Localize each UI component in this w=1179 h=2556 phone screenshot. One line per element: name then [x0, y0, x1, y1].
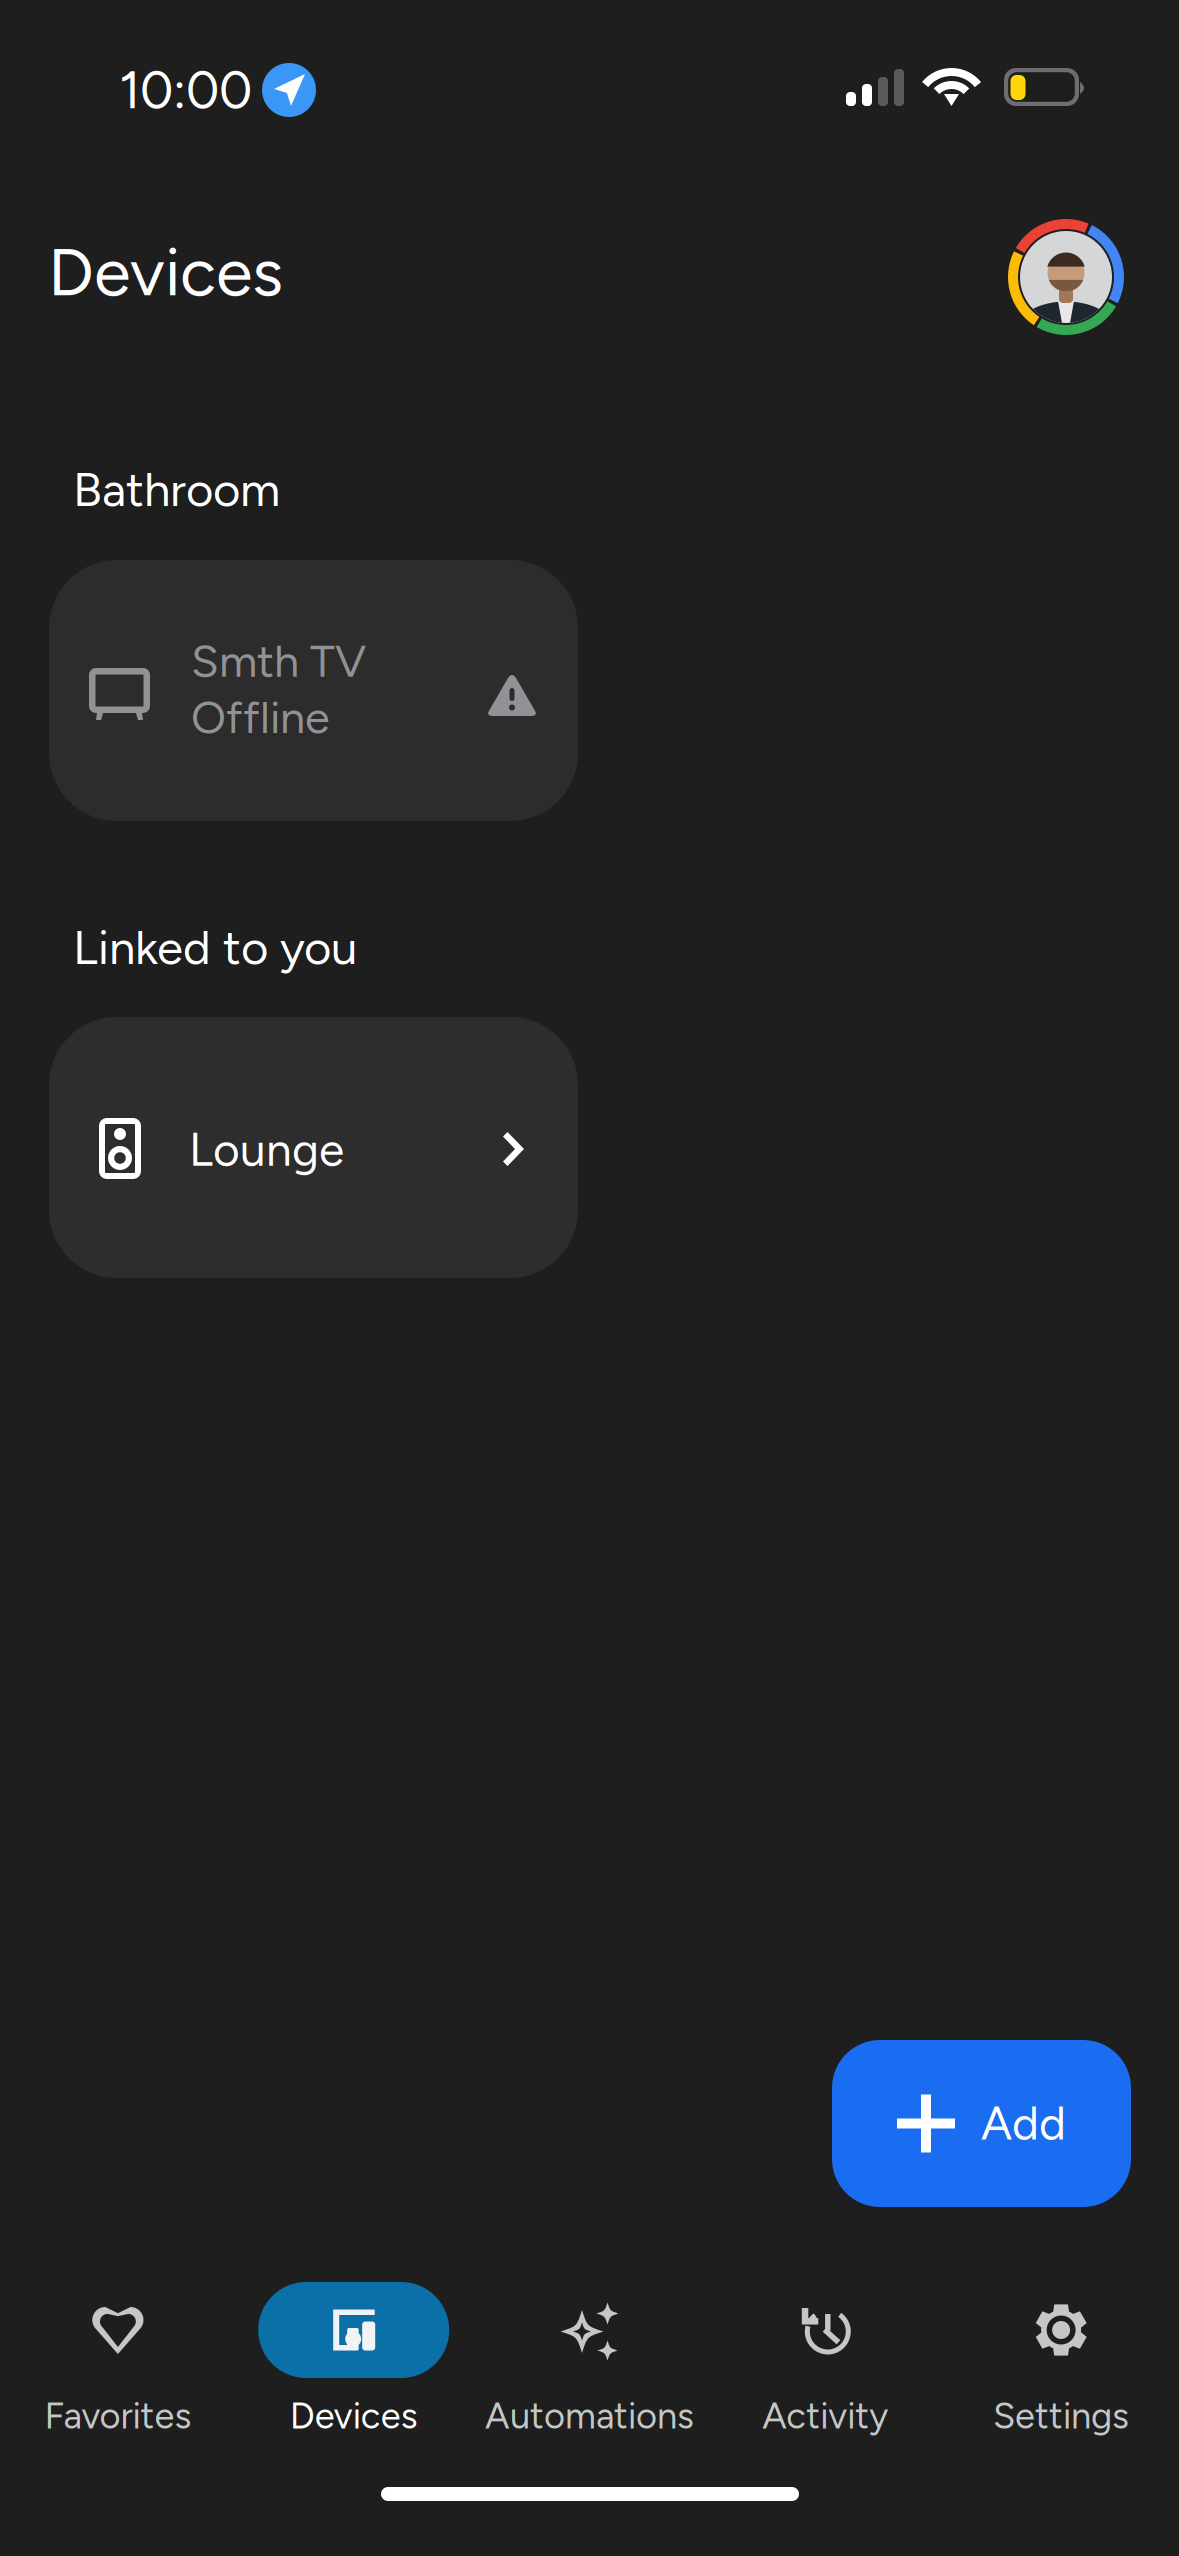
staticText: Linked to you: [73, 919, 357, 976]
button[interactable]: Lounge: [49, 1017, 578, 1278]
staticText: Bathroom: [73, 461, 280, 518]
staticText: Settings: [993, 2394, 1129, 2437]
button[interactable]: Favorites: [0, 2282, 236, 2452]
button[interactable]: Account: [1006, 217, 1126, 337]
staticText: Lounge: [189, 1122, 344, 1177]
staticText: Devices: [290, 2394, 418, 2437]
staticText: Offline: [191, 690, 330, 744]
staticText: 10:00: [119, 59, 252, 121]
staticText: Devices: [48, 232, 283, 312]
staticText: Add: [981, 2096, 1066, 2151]
button[interactable]: Automations: [472, 2282, 707, 2452]
button[interactable]: Settings: [943, 2282, 1179, 2452]
button[interactable]: Activity: [707, 2282, 943, 2452]
staticText: Favorites: [44, 2394, 191, 2437]
button[interactable]: Smth TV: [49, 560, 578, 821]
button[interactable]: Devices: [236, 2282, 472, 2452]
staticText: Automations: [485, 2394, 694, 2437]
staticText: Activity: [762, 2394, 888, 2437]
button[interactable]: Add: [832, 2040, 1131, 2207]
staticText: Smth TV: [191, 634, 366, 688]
